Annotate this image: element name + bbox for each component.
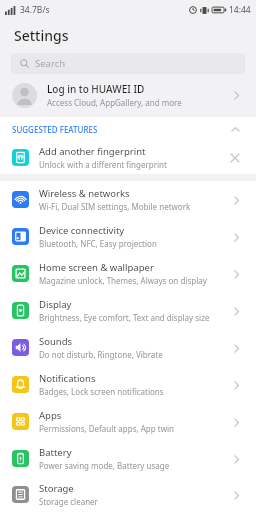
staticText: Brightness, Eye comfort, Text and displa… bbox=[39, 312, 210, 323]
staticText: Device connectivity bbox=[39, 224, 125, 237]
staticText: Settings bbox=[14, 26, 69, 45]
button[interactable]: Device connectivity bbox=[0, 218, 256, 255]
staticText: Battery bbox=[39, 446, 72, 459]
staticText: Wireless & networks bbox=[39, 187, 130, 200]
button[interactable]: Notifications bbox=[0, 366, 256, 403]
staticText: Home screen & wallpaper bbox=[39, 261, 154, 274]
staticText: Log in to HUAWEI ID bbox=[47, 82, 145, 96]
staticText: 14:44 bbox=[229, 4, 251, 16]
button[interactable]: Battery bbox=[0, 440, 256, 477]
button[interactable]: Display bbox=[0, 292, 256, 329]
button[interactable]: Wireless & networks bbox=[0, 181, 256, 218]
button[interactable]: Sounds bbox=[0, 329, 256, 366]
staticText: 34.7B/s bbox=[20, 4, 50, 16]
staticText: Apps bbox=[39, 409, 62, 422]
staticText: Bluetooth, NFC, Easy projection bbox=[39, 238, 157, 249]
staticText: Badges, Lock screen notifications bbox=[39, 386, 164, 397]
staticText: Unlock with a different fingerprint bbox=[39, 159, 167, 170]
staticText: Do not disturb, Ringtone, Vibrate bbox=[39, 349, 163, 360]
staticText: Notifications bbox=[39, 372, 96, 385]
button[interactable]: Home screen & wallpaper bbox=[0, 255, 256, 292]
staticText: Access Cloud, AppGallery, and more bbox=[47, 97, 182, 108]
button[interactable]: Search bbox=[11, 53, 245, 74]
button[interactable]: SUGGESTED FEATURES bbox=[0, 117, 256, 141]
staticText: Permissions, Default apps, App twin bbox=[39, 423, 174, 434]
button[interactable]: Storage bbox=[0, 477, 256, 512]
other: Collapse bbox=[226, 120, 244, 138]
button[interactable]: Dismiss bbox=[226, 149, 244, 167]
staticText: Wi-Fi, Dual SIM settings, Mobile network bbox=[39, 201, 191, 212]
staticText: Storage cleaner bbox=[39, 496, 98, 507]
button[interactable]: Apps bbox=[0, 403, 256, 440]
staticText: Add another fingerprint bbox=[39, 145, 146, 158]
staticText: Sounds bbox=[39, 335, 73, 348]
staticText: Power saving mode, Battery usage bbox=[39, 460, 170, 471]
staticText: Search bbox=[35, 57, 66, 70]
staticText: Display bbox=[39, 298, 72, 311]
staticText: SUGGESTED FEATURES bbox=[12, 124, 226, 135]
button[interactable]: Log in to HUAWEI ID bbox=[0, 77, 256, 113]
staticText: Storage bbox=[39, 482, 74, 495]
staticText: Magazine unlock, Themes, Always on displ… bbox=[39, 275, 207, 286]
button[interactable]: Add another fingerprint bbox=[0, 141, 256, 174]
